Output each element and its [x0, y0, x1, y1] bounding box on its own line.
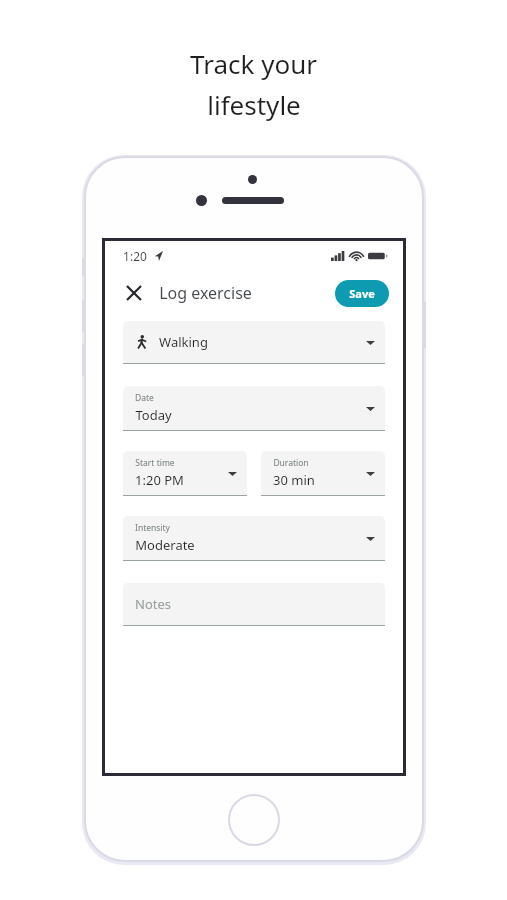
staticText: 30 min [273, 471, 315, 489]
staticText: Notes [135, 595, 171, 613]
staticText: Moderate [135, 536, 195, 554]
staticText: 1:20 PM [135, 471, 184, 489]
button[interactable]: Intensity [123, 516, 385, 561]
staticText: Save [349, 286, 375, 301]
staticText: Intensity [135, 522, 170, 534]
button[interactable]: Date [123, 386, 385, 431]
button[interactable]: Start time [123, 451, 247, 496]
staticText: Start time [135, 457, 175, 469]
staticText: Walking [159, 333, 208, 351]
button[interactable]: Walking [123, 321, 385, 364]
button[interactable]: Notes [123, 583, 385, 626]
staticText: Log exercise [159, 282, 252, 304]
staticText: lifestyle [207, 87, 301, 122]
staticText: Duration [273, 457, 309, 469]
button[interactable]: Close [121, 280, 147, 306]
staticText: Track your [190, 46, 317, 81]
button[interactable]: Duration [261, 451, 385, 496]
button[interactable]: Save [335, 280, 389, 307]
staticText: Today [135, 406, 172, 424]
staticText: Date [135, 392, 154, 404]
staticText: 1:20 [123, 248, 147, 264]
